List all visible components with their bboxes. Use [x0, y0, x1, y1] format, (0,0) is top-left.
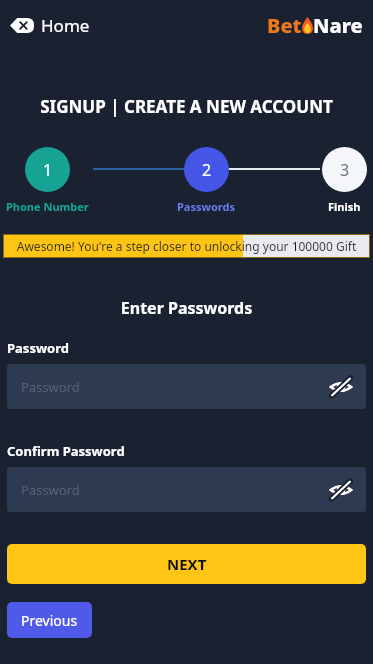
- button[interactable]: Password: [7, 364, 366, 409]
- staticText: Bet: [267, 12, 302, 39]
- staticText: Phone Number: [6, 199, 89, 214]
- button[interactable]: BetNare logo: [267, 12, 363, 39]
- button[interactable]: Home: [10, 14, 90, 37]
- staticText: 2: [202, 159, 212, 181]
- staticText: Enter Passwords: [7, 297, 366, 319]
- button[interactable]: Toggle password visibility: [328, 374, 354, 400]
- button[interactable]: Toggle password visibility: [328, 477, 354, 503]
- staticText: Password: [21, 481, 80, 499]
- staticText: Confirm Password: [7, 442, 125, 460]
- staticText: 1: [43, 159, 53, 181]
- staticText: Home: [41, 14, 90, 37]
- button[interactable]: Password: [7, 467, 366, 512]
- button[interactable]: 3: [322, 147, 367, 192]
- button[interactable]: Previous: [7, 602, 92, 638]
- button[interactable]: 2: [184, 147, 229, 192]
- staticText: Awesome! You're a step closer to unlocki…: [9, 238, 364, 254]
- staticText: Password: [7, 339, 69, 357]
- button[interactable]: 1: [25, 147, 70, 192]
- staticText: Password: [21, 378, 80, 396]
- button[interactable]: NEXT: [7, 544, 366, 584]
- button[interactable]: [3, 234, 370, 258]
- staticText: Nare: [313, 12, 363, 39]
- staticText: Passwords: [177, 199, 235, 214]
- staticText: NEXT: [167, 554, 207, 574]
- staticText: Finish: [328, 199, 361, 214]
- staticText: Previous: [21, 611, 78, 630]
- staticText: SIGNUP | CREATE A NEW ACCOUNT: [0, 95, 373, 118]
- staticText: 3: [340, 159, 350, 181]
